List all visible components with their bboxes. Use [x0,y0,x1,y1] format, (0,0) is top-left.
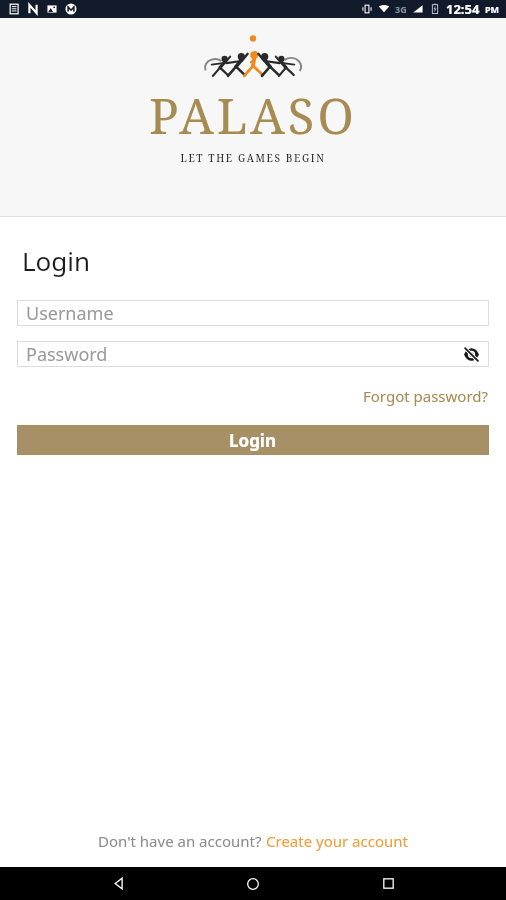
button[interactable]: Login [17,425,489,455]
staticText: LET THE GAMES BEGIN [180,151,326,165]
button[interactable]: Forgot password? [346,381,506,411]
staticText: Login [229,429,277,452]
staticText: 12:54 [446,0,480,18]
staticText: PALASO [149,82,357,149]
button[interactable]: Create your account [266,828,408,854]
staticText: Forgot password? [363,386,489,406]
button[interactable]: Home [236,867,270,900]
staticText: Don't have an account? [98,831,266,851]
staticText: Username [26,301,114,326]
staticText: Password [26,342,108,367]
staticText: Login [22,243,91,278]
button[interactable]: Back [101,867,135,900]
button[interactable]: Recent apps [371,867,405,900]
staticText: PM [485,3,500,15]
staticText: Create your account [266,831,408,851]
button[interactable]: Show password [461,344,481,364]
button[interactable]: Password [17,341,489,367]
staticText: 3G [395,3,407,15]
button[interactable]: Username [17,300,489,326]
